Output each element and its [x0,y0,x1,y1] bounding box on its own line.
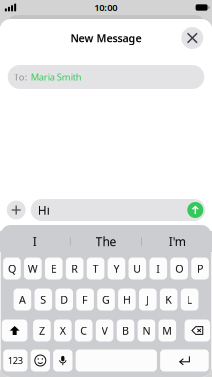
button[interactable]: E [45,257,63,279]
staticText: U [133,261,141,276]
staticText: Z [39,323,45,338]
staticText: X [60,323,66,338]
button[interactable]: Q [3,257,21,279]
staticText: S [40,292,46,307]
button[interactable]: L [181,288,198,310]
button[interactable]: T [87,257,104,279]
button[interactable]: J [139,288,157,310]
button[interactable]: Close [181,27,203,49]
staticText [113,345,119,375]
staticText: V [102,323,108,338]
button[interactable]: Send [187,202,203,218]
staticText: G [102,292,110,307]
staticText: 10:00 [94,1,117,14]
button[interactable]: Space [76,349,157,371]
staticText: K [165,292,172,307]
button[interactable]: S [34,288,52,310]
button[interactable]: Add attachment [7,200,26,219]
staticText: O [175,261,183,276]
button[interactable]: 123 [3,349,27,371]
button[interactable]: K [160,288,177,310]
staticText: E [51,261,57,276]
button[interactable]: P [191,257,209,279]
button[interactable]: Z [33,319,51,341]
staticText: The [95,233,116,249]
staticText: C [80,323,87,338]
staticText: Maria Smith [31,71,82,83]
button[interactable]: X [54,319,72,341]
button[interactable]: Shift [2,319,27,341]
staticText: P [197,261,203,276]
staticText: 123 [8,354,23,367]
button[interactable]: I [149,257,167,279]
staticText: M [162,323,172,338]
staticText: F [82,292,88,307]
button[interactable]: W [24,257,42,279]
button[interactable]: Emoji [31,349,50,371]
button[interactable]: Dictate [53,349,72,371]
staticText: H [123,292,131,307]
staticText: J [146,292,149,307]
button[interactable]: D [55,288,73,310]
staticText: L [187,292,193,307]
button[interactable]: C [75,319,92,341]
button[interactable]: F [76,288,94,310]
button[interactable]: Delete [185,319,210,341]
button[interactable]: The [71,231,141,252]
button[interactable]: H [118,288,136,310]
staticText: To: [14,71,28,83]
button[interactable]: A [14,288,31,310]
button[interactable]: V [96,319,113,341]
button[interactable]: Y [108,257,125,279]
button[interactable]: O [170,257,188,279]
button[interactable]: M [158,319,176,341]
staticText: W [28,261,38,276]
button[interactable]: N [138,319,155,341]
staticText: A [19,292,26,307]
staticText: I'm [169,233,186,249]
staticText: D [60,292,68,307]
button[interactable]: Return [160,349,209,371]
button[interactable]: U [129,257,146,279]
staticText: R [71,261,78,276]
button[interactable]: R [66,257,83,279]
staticText: B [122,323,129,338]
staticText: I [156,261,160,276]
button[interactable]: G [97,288,115,310]
staticText: Hi [38,202,50,218]
button[interactable]: I [0,231,70,252]
staticText: I [33,233,37,249]
button[interactable]: I'm [142,231,212,252]
staticText: T [93,261,99,276]
staticText: New Message [70,31,141,45]
staticText: Q [8,261,16,276]
button[interactable]: B [117,319,134,341]
staticText: Y [113,261,119,276]
staticText: N [142,323,150,338]
